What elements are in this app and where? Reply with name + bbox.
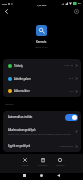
- button[interactable]: Tárhely: [3, 59, 81, 72]
- staticText: Egyéb engedélyek: [8, 144, 31, 148]
- staticText: Verzió 7.7.5.A: [35, 46, 49, 49]
- staticText: Leállítás: [21, 164, 29, 167]
- staticText: Tárolóeszköz, helymeghatározás, kamera, …: [8, 133, 71, 136]
- staticText: 0,0%: [69, 90, 74, 93]
- staticText: 1,09 kB/s: [37, 4, 47, 7]
- button[interactable]: Automatikus indítás: [3, 111, 81, 123]
- button[interactable]: Home: [40, 174, 43, 177]
- staticText: Eltávolítás: [38, 164, 48, 167]
- staticText: Engedélyek: [5, 103, 14, 105]
- staticText: 2 engedélyezve: [59, 145, 74, 148]
- button[interactable]: Alkalmazásengedélyek: [3, 123, 81, 140]
- staticText: Keresés: [36, 40, 47, 44]
- staticText: Tárhely: [14, 64, 23, 68]
- button[interactable]: Egyéb engedélyek: [3, 140, 81, 152]
- staticText: Alkalmazásengedélyek: [8, 128, 36, 132]
- button[interactable]: Settings: [71, 6, 82, 17]
- button[interactable]: Back: [1, 6, 12, 17]
- staticText: Adattörlés: [55, 164, 65, 167]
- staticText: Automatikus indítás: [8, 115, 33, 119]
- staticText: 96 B: [69, 77, 74, 80]
- staticText: Akkumulátor: [14, 89, 30, 93]
- button[interactable]: Clear data: [53, 154, 66, 167]
- staticText: 13,86 MB: [64, 64, 74, 67]
- button[interactable]: Akkumulátor: [3, 85, 81, 97]
- button[interactable]: Uninstall: [36, 154, 49, 167]
- button[interactable]: Back: [57, 174, 60, 177]
- button[interactable]: Stop: [18, 154, 31, 167]
- button[interactable]: Adatforgalom: [3, 72, 81, 85]
- staticText: 90: [78, 2, 81, 5]
- staticText: Adatforgalom: [14, 77, 31, 81]
- staticText: 9:08: [2, 2, 7, 5]
